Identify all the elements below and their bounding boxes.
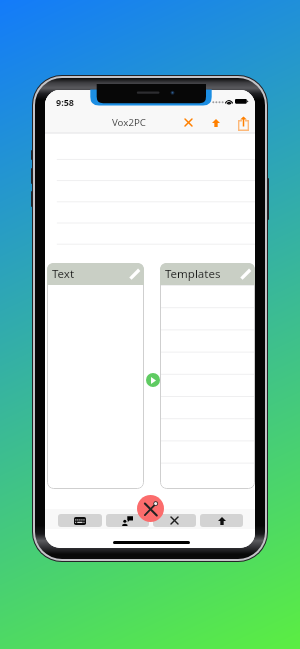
staticText: 9:58 <box>56 96 74 107</box>
button[interactable]: Keyboard <box>58 514 102 527</box>
button[interactable]: Send <box>200 514 243 527</box>
button[interactable]: Send <box>207 114 225 132</box>
button[interactable]: Share <box>234 114 252 132</box>
button[interactable]: Text <box>47 263 144 285</box>
button[interactable]: Contacts <box>106 514 149 527</box>
button[interactable]: Templates <box>160 263 255 285</box>
staticText: Templates <box>165 266 240 282</box>
staticText: Vox2PC <box>112 116 146 128</box>
staticText: Text <box>52 266 129 282</box>
button[interactable]: Stop recording <box>137 495 164 522</box>
button[interactable]: Clear <box>153 514 196 527</box>
button[interactable]: Play <box>146 373 160 387</box>
button[interactable]: Close <box>179 113 197 131</box>
